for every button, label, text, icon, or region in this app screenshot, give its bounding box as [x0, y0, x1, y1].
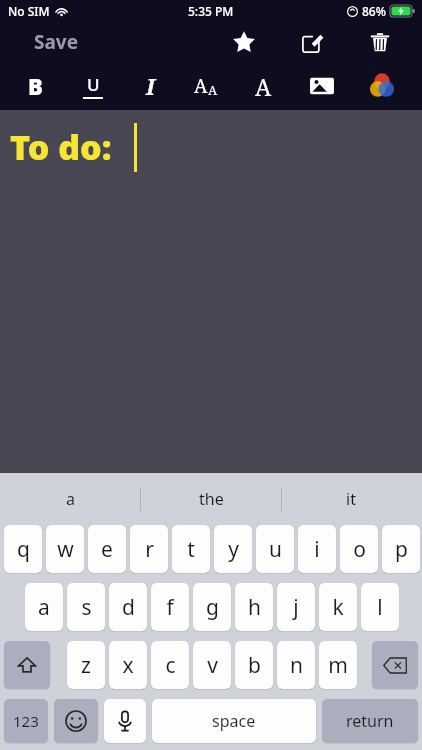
button[interactable]: q — [4, 525, 42, 573]
button[interactable]: Text color — [361, 65, 403, 107]
staticText: j — [293, 593, 299, 622]
button[interactable]: space — [152, 699, 316, 743]
button[interactable]: Favorite — [226, 24, 262, 60]
staticText: 86% — [362, 3, 386, 19]
staticText: it — [346, 488, 356, 510]
button[interactable]: p — [382, 525, 420, 573]
staticText: u — [269, 535, 282, 564]
staticText: space — [212, 710, 256, 732]
staticText: a — [38, 593, 50, 622]
staticText: q — [17, 535, 30, 564]
button[interactable]: r — [130, 525, 168, 573]
staticText: b — [248, 651, 261, 680]
button[interactable]: k — [319, 583, 357, 631]
button[interactable]: Backspace — [372, 641, 418, 689]
button[interactable]: Emoji — [54, 699, 98, 743]
staticText: h — [248, 593, 261, 622]
staticText: p — [395, 535, 408, 564]
button[interactable]: z — [67, 641, 105, 689]
button[interactable]: a — [25, 583, 63, 631]
button[interactable]: Italic — [129, 65, 171, 107]
staticText: Save — [34, 29, 79, 55]
staticText: r — [145, 535, 154, 564]
staticText: A — [255, 71, 272, 102]
button[interactable]: Underline — [72, 65, 114, 107]
staticText: a — [66, 488, 75, 510]
button[interactable]: e — [88, 525, 126, 573]
staticText: y — [228, 535, 239, 564]
button[interactable]: i — [298, 525, 336, 573]
button[interactable]: l — [361, 583, 399, 631]
button[interactable]: Bold — [14, 65, 56, 107]
button[interactable]: t — [172, 525, 210, 573]
staticText: x — [122, 651, 134, 680]
button[interactable]: Save — [28, 25, 85, 59]
button[interactable]: a — [20, 476, 120, 522]
button[interactable]: To do: — [0, 110, 422, 473]
staticText: 123 — [13, 711, 39, 731]
staticText: B — [28, 71, 43, 101]
staticText: 5:35 PM — [188, 3, 234, 19]
staticText: A — [208, 81, 218, 99]
button[interactable]: g — [193, 583, 231, 631]
staticText: return — [346, 710, 394, 732]
button[interactable]: s — [67, 583, 105, 631]
staticText: No SIM — [8, 3, 50, 19]
button[interactable]: m — [319, 641, 357, 689]
button[interactable]: Font — [242, 65, 284, 107]
button[interactable]: c — [151, 641, 189, 689]
button[interactable]: v — [193, 641, 231, 689]
button[interactable]: it — [301, 476, 401, 522]
button[interactable]: w — [46, 525, 84, 573]
button[interactable]: f — [151, 583, 189, 631]
button[interactable]: o — [340, 525, 378, 573]
staticText: t — [187, 535, 195, 564]
staticText: z — [81, 651, 91, 680]
staticText: n — [290, 651, 303, 680]
button[interactable]: Numbers — [4, 699, 48, 743]
button[interactable]: Edit — [294, 24, 330, 60]
staticText: s — [81, 593, 92, 622]
button[interactable]: h — [235, 583, 273, 631]
staticText: U — [87, 73, 100, 96]
staticText: m — [328, 651, 348, 680]
staticText: I — [146, 71, 155, 101]
button[interactable]: n — [277, 641, 315, 689]
staticText: i — [314, 535, 320, 564]
staticText: the — [199, 488, 224, 510]
button[interactable]: Shift — [4, 641, 50, 689]
button[interactable]: Dictate — [104, 699, 146, 743]
staticText: A — [194, 73, 208, 99]
staticText: l — [377, 593, 383, 622]
button[interactable]: b — [235, 641, 273, 689]
staticText: v — [207, 651, 218, 680]
button[interactable]: u — [256, 525, 294, 573]
button[interactable]: x — [109, 641, 147, 689]
staticText: f — [166, 593, 174, 622]
staticText: k — [332, 593, 344, 622]
button[interactable]: the — [161, 476, 261, 522]
button[interactable]: d — [109, 583, 147, 631]
staticText: w — [57, 535, 74, 564]
staticText: g — [206, 593, 219, 622]
staticText: e — [101, 535, 113, 564]
staticText: c — [165, 651, 176, 680]
button[interactable]: j — [277, 583, 315, 631]
staticText: d — [122, 593, 135, 622]
button[interactable]: return — [322, 699, 418, 743]
button[interactable]: Delete — [362, 24, 398, 60]
button[interactable]: y — [214, 525, 252, 573]
button[interactable]: Insert image — [301, 65, 343, 107]
staticText: To do: — [10, 124, 112, 170]
staticText: o — [353, 535, 366, 564]
button[interactable]: Text size — [185, 65, 227, 107]
